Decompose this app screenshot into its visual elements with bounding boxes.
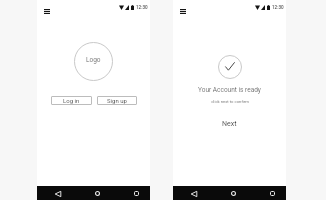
staticText: click next to confirm [211, 99, 249, 104]
button[interactable]: Home [228, 188, 239, 199]
button[interactable]: Home [92, 188, 103, 199]
staticText: 12:30 [136, 5, 148, 10]
button[interactable]: Log in [51, 96, 92, 105]
staticText: 12:30 [272, 5, 284, 10]
staticText: Logo [86, 56, 101, 64]
staticText: Next [222, 120, 237, 128]
button[interactable]: Recent apps [131, 188, 142, 199]
staticText: Log in [63, 97, 80, 104]
button[interactable]: Recent apps [267, 188, 278, 199]
button[interactable]: Open navigation menu [42, 7, 51, 15]
staticText: Sign up [107, 97, 127, 104]
button[interactable]: Back [52, 188, 63, 199]
button[interactable]: Next [214, 116, 245, 129]
button[interactable]: Open navigation menu [178, 7, 187, 15]
button[interactable]: Sign up [97, 96, 137, 105]
staticText: Your Account is ready [198, 86, 261, 94]
button[interactable]: Back [188, 188, 199, 199]
